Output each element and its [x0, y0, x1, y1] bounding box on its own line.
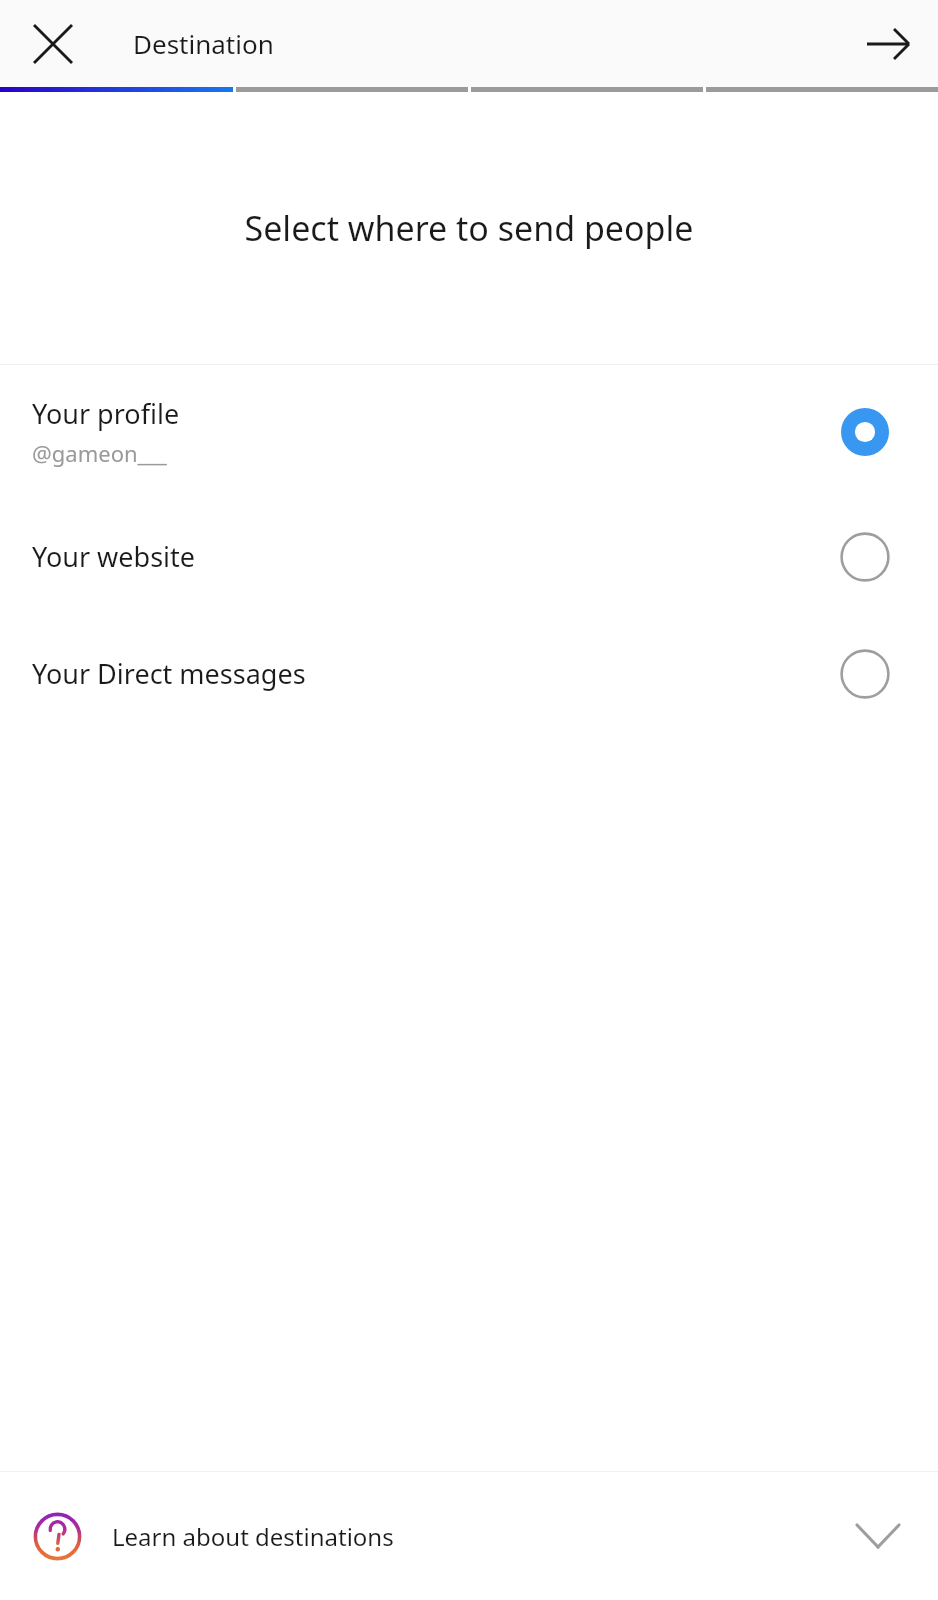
staticText: @gameon___	[32, 438, 167, 468]
staticText: Destination	[133, 26, 274, 61]
staticText: Your website	[32, 538, 196, 575]
staticText: Your profile	[32, 395, 180, 432]
other: Expand	[848, 1506, 908, 1566]
button[interactable]: Your website	[0, 498, 938, 615]
button[interactable]: Your profile	[0, 365, 938, 498]
button[interactable]: Close	[18, 9, 88, 79]
button[interactable]: Your Direct messages	[0, 615, 938, 732]
staticText: Learn about destinations	[112, 1520, 848, 1553]
staticText: Select where to send people	[0, 205, 938, 251]
staticText: Your Direct messages	[32, 655, 306, 692]
button[interactable]: Next	[852, 8, 924, 80]
button[interactable]: Learn about destinations	[0, 1472, 938, 1600]
